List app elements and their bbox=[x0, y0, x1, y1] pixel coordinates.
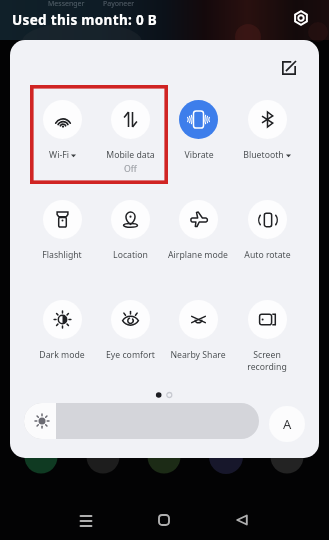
staticText: Nearby Share bbox=[170, 349, 226, 361]
staticText: Airplane mode bbox=[168, 249, 228, 261]
button[interactable]: Airplane mode bbox=[164, 200, 232, 261]
button[interactable]: A bbox=[269, 406, 305, 442]
button[interactable]: Home bbox=[142, 498, 186, 540]
staticText: Messenger bbox=[48, 0, 85, 9]
staticText: Flashlight bbox=[42, 249, 82, 261]
button[interactable]: Location bbox=[96, 200, 164, 261]
button[interactable]: Flashlight bbox=[28, 200, 96, 261]
button[interactable]: Mobile data bbox=[96, 100, 164, 175]
button[interactable]: Vibrate bbox=[164, 100, 232, 161]
staticText: Vibrate bbox=[184, 149, 214, 161]
button[interactable]: Edit bbox=[271, 50, 307, 86]
staticText: A bbox=[283, 415, 292, 433]
button[interactable]: Eye comfort bbox=[96, 300, 164, 361]
staticText: Auto rotate bbox=[244, 249, 291, 261]
button[interactable]: Nearby Share bbox=[164, 300, 232, 361]
button[interactable]: Recents bbox=[64, 498, 108, 540]
staticText: Bluetooth bbox=[243, 149, 284, 161]
staticText: Wi-Fi bbox=[49, 149, 69, 161]
staticText: Mobile data bbox=[106, 149, 155, 161]
button[interactable]: Brightness bbox=[24, 403, 259, 439]
staticText: Eye comfort bbox=[106, 349, 155, 361]
button[interactable]: Bluetooth bbox=[233, 100, 301, 161]
button[interactable]: Screen recording bbox=[233, 300, 301, 373]
button[interactable]: Settings bbox=[289, 6, 313, 30]
button[interactable]: Dark mode bbox=[28, 300, 96, 361]
staticText: Off bbox=[124, 163, 137, 175]
button[interactable]: Wi-Fi bbox=[28, 100, 96, 161]
staticText: Screen recording bbox=[247, 349, 287, 373]
staticText: Used this month: 0 B bbox=[12, 11, 158, 29]
button[interactable]: Auto rotate bbox=[233, 200, 301, 261]
staticText: Payoneer bbox=[103, 0, 135, 9]
staticText: Dark mode bbox=[39, 349, 85, 361]
staticText: Location bbox=[113, 249, 148, 261]
button[interactable]: Back bbox=[220, 498, 264, 540]
